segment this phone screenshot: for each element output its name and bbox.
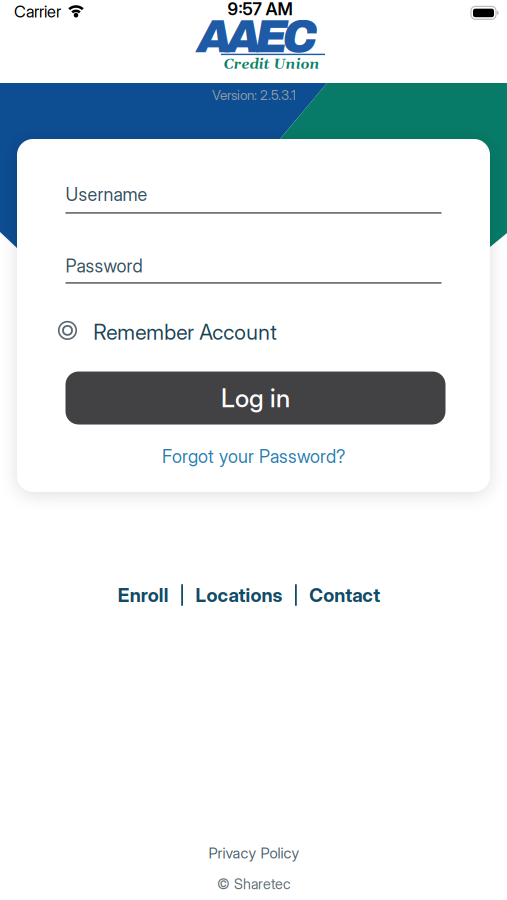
staticText: Version: 2.5.3.1 xyxy=(212,87,296,103)
staticText: Log in xyxy=(221,383,290,413)
button[interactable]: Log in xyxy=(65,371,445,424)
button[interactable]: Username xyxy=(65,176,441,220)
staticText: © Sharetec xyxy=(217,875,291,893)
staticText: Password xyxy=(65,255,142,277)
staticText: 9:57 AM xyxy=(227,0,292,19)
staticText: Remember Account xyxy=(93,319,277,345)
staticText: Privacy Policy xyxy=(208,844,299,862)
button[interactable]: Forgot your Password? xyxy=(162,446,345,467)
button[interactable]: Remember Account xyxy=(59,319,507,345)
button[interactable]: Privacy Policy xyxy=(208,844,299,862)
staticText: Contact xyxy=(309,583,380,606)
staticText: AAEC xyxy=(197,12,317,62)
staticText: Credit Union xyxy=(223,55,319,73)
staticText: Carrier xyxy=(14,2,61,21)
button[interactable]: Enroll xyxy=(118,583,169,606)
staticText: Forgot your Password? xyxy=(162,446,345,467)
button[interactable]: Password xyxy=(65,248,441,292)
button[interactable]: Contact xyxy=(309,583,380,606)
staticText: Enroll xyxy=(118,583,169,606)
staticText: Username xyxy=(65,184,147,205)
staticText: Locations xyxy=(195,583,282,606)
button[interactable]: Locations xyxy=(195,583,282,606)
